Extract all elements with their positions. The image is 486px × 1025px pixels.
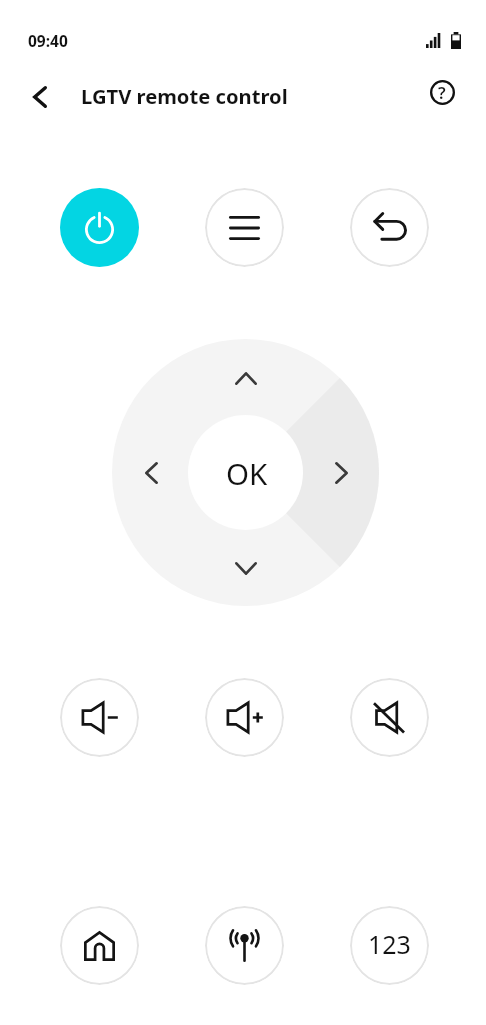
button[interactable]: Volume down xyxy=(60,678,139,757)
button[interactable]: Navigate up xyxy=(26,77,66,117)
button[interactable]: Right xyxy=(318,450,364,496)
button[interactable]: Numbers xyxy=(350,906,429,985)
button[interactable]: Help xyxy=(424,74,460,110)
staticText: 123 xyxy=(368,927,411,961)
staticText: OK xyxy=(226,453,268,493)
button[interactable]: Down xyxy=(223,545,269,591)
staticText: ? xyxy=(438,81,446,103)
button[interactable]: Up xyxy=(223,355,269,401)
button[interactable]: Input source xyxy=(205,906,284,985)
button[interactable]: OK xyxy=(188,415,303,530)
button[interactable]: Mute xyxy=(350,678,429,757)
button[interactable]: Left xyxy=(128,450,174,496)
button[interactable]: Back xyxy=(350,188,429,267)
button[interactable]: Volume up xyxy=(205,678,284,757)
staticText: 09:40 xyxy=(28,30,68,51)
button[interactable]: Home xyxy=(60,906,139,985)
button[interactable]: Power xyxy=(60,188,139,267)
staticText: LGTV remote control xyxy=(81,82,288,110)
button[interactable]: Menu xyxy=(205,188,284,267)
